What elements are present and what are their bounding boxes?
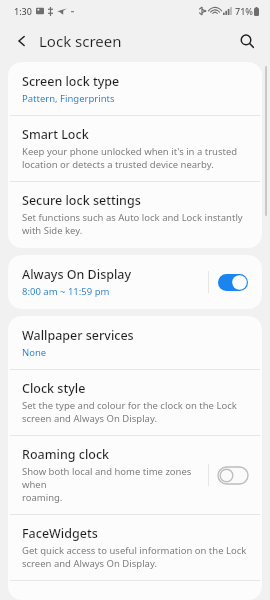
staticText: FaceWidgets (22, 525, 98, 542)
button[interactable]: Clock style (8, 370, 262, 435)
staticText: Screen lock type (22, 73, 120, 90)
staticText: 71% (235, 5, 253, 17)
staticText: Wallpaper services (22, 327, 134, 344)
staticText: Pattern, Fingerprints (22, 92, 115, 105)
staticText: Lock screen (39, 31, 122, 51)
staticText: Keep your phone unlocked when it's in a … (22, 145, 238, 171)
button[interactable]: Smart Lock (8, 116, 262, 181)
button[interactable]: Wallpaper services (8, 316, 262, 369)
staticText: Clock style (22, 380, 86, 397)
staticText: Smart Lock (22, 126, 89, 143)
staticText: 8:00 am ~ 11:59 pm (22, 285, 110, 298)
staticText: Secure lock settings (22, 192, 141, 209)
staticText: Set the type and colour for the clock on… (22, 399, 237, 425)
staticText: Set functions such as Auto lock and Lock… (22, 211, 243, 237)
staticText: Get quick access to useful information o… (22, 544, 247, 570)
staticText: Show both local and home time zones when… (22, 465, 200, 504)
staticText: Roaming clock (22, 446, 110, 463)
button[interactable]: Back (9, 28, 35, 54)
staticText: 1:30 (14, 5, 32, 17)
button[interactable]: Toggle Roaming clock (218, 467, 248, 484)
button[interactable]: Search (233, 27, 261, 55)
staticText: Always On Display (22, 266, 132, 283)
button[interactable]: Secure lock settings (8, 182, 262, 248)
staticText: None (22, 346, 47, 359)
button[interactable]: FaceWidgets (8, 515, 262, 580)
button[interactable]: Toggle Always On Display (218, 274, 248, 291)
button[interactable]: Roaming clock (8, 436, 262, 514)
button[interactable]: Always On Display (8, 255, 262, 309)
button[interactable]: Screen lock type (8, 62, 262, 115)
